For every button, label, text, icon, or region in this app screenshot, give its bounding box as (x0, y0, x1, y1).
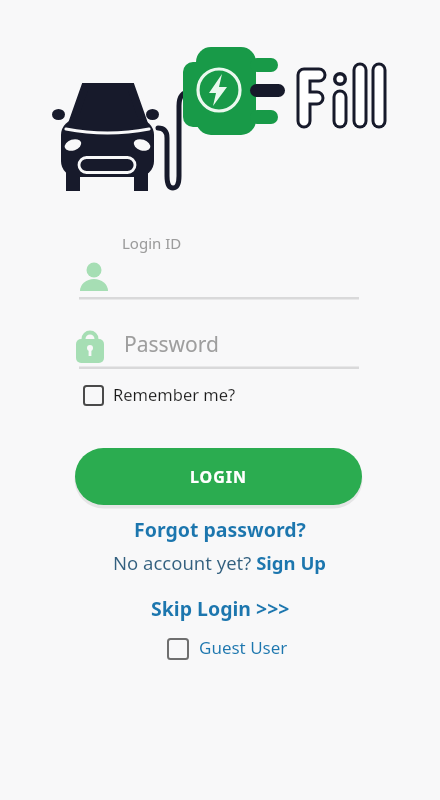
button[interactable]: No account yet? Sign Up (113, 550, 327, 575)
staticText: Guest User (199, 636, 288, 659)
button[interactable]: Skip Login >>> (151, 595, 290, 622)
staticText: Login ID (122, 233, 182, 253)
button[interactable]: LOGIN (75, 448, 362, 505)
staticText: Password (124, 330, 219, 359)
staticText: Remember me? (113, 383, 236, 405)
button[interactable] (75, 252, 362, 300)
button[interactable]: Forgot password? (134, 516, 306, 543)
button[interactable] (80, 381, 250, 411)
staticText: LOGIN (190, 466, 248, 488)
button[interactable] (163, 635, 288, 664)
button[interactable] (75, 322, 362, 370)
